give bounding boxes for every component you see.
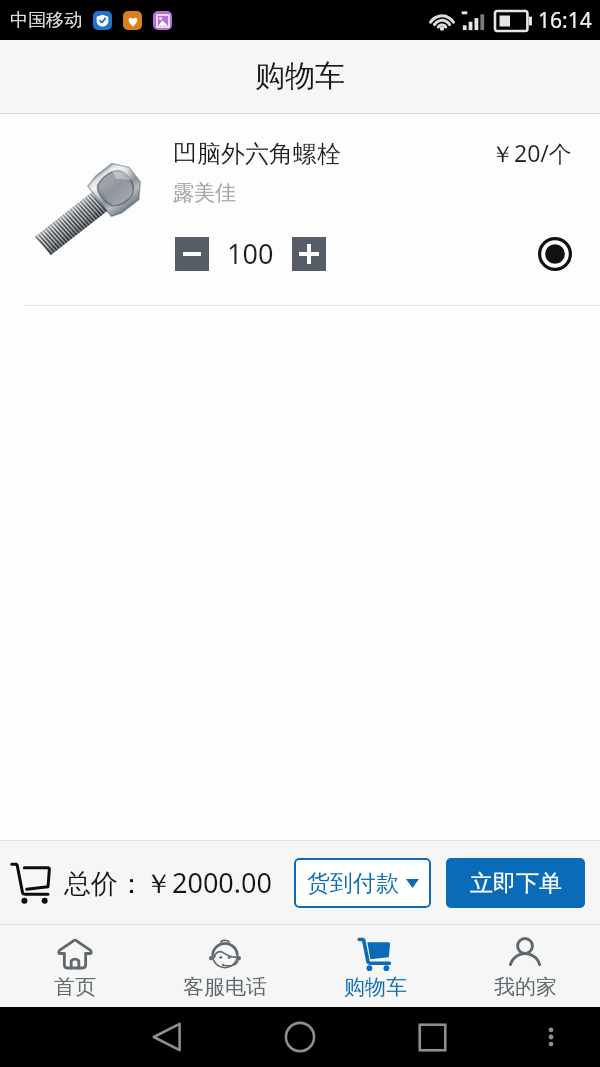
button[interactable]: 凹脑外六角螺栓 露美佳 ￥20/个 <box>0 114 600 232</box>
staticText: 首页 <box>54 974 96 1000</box>
button[interactable]: 我的家 <box>450 924 600 1007</box>
staticText: 购物车 <box>255 57 345 95</box>
staticText: 中国移动 <box>10 9 82 32</box>
button[interactable]: Back <box>152 1022 182 1052</box>
staticText: 我的家 <box>494 974 557 1000</box>
button[interactable]: Recent apps <box>418 1023 447 1052</box>
button[interactable]: More options <box>540 1026 562 1048</box>
staticText: 购物车 <box>344 974 407 1000</box>
staticText: 货到付款 <box>307 869 399 898</box>
staticText: 总价：￥2000.00 <box>64 864 272 901</box>
button[interactable]: Select item <box>528 227 582 281</box>
button[interactable]: Home <box>284 1021 316 1053</box>
staticText: ￥20/个 <box>491 137 572 168</box>
staticText: 16:14 <box>538 6 592 35</box>
button[interactable]: 首页 <box>0 924 150 1007</box>
button[interactable]: Decrease quantity <box>175 237 209 271</box>
staticText: 凹脑外六角螺栓 <box>173 139 341 169</box>
button[interactable]: 货到付款 <box>294 858 431 908</box>
staticText: 客服电话 <box>183 974 267 1000</box>
staticText: 100 <box>227 235 274 272</box>
button[interactable]: 立即下单 <box>446 858 585 908</box>
staticText: 露美佳 <box>173 180 236 206</box>
staticText: 立即下单 <box>470 869 562 898</box>
button[interactable]: 购物车 <box>300 924 450 1007</box>
button[interactable]: Increase quantity <box>292 237 326 271</box>
other: Product photo <box>24 130 150 290</box>
button[interactable]: 客服电话 <box>150 924 300 1007</box>
